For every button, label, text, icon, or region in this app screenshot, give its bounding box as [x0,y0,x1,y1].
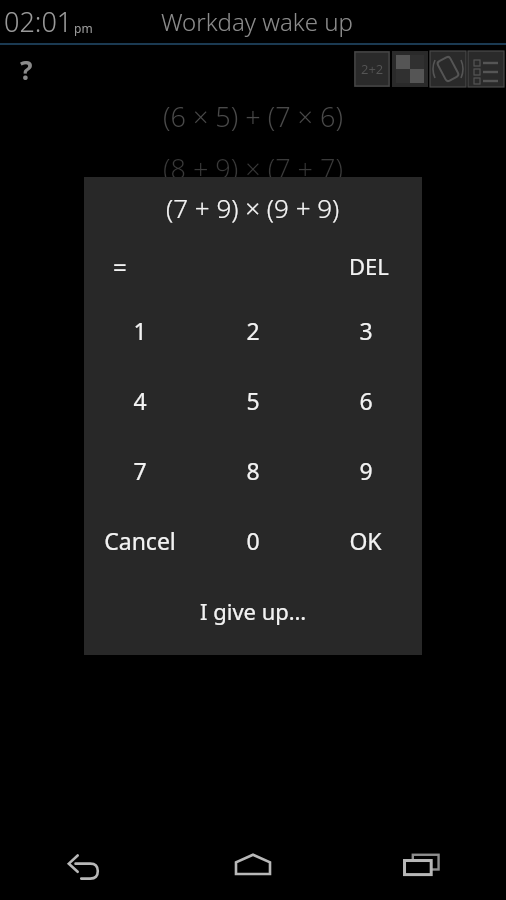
staticText: = [113,250,127,283]
button[interactable]: Help [6,49,46,89]
staticText: ? [20,52,33,87]
staticText: 5 [246,385,260,416]
button[interactable]: Pattern puzzle [392,51,428,87]
button[interactable]: 8 [196,435,309,505]
staticText: 2 [246,315,260,346]
staticText: 9 [359,455,373,486]
button[interactable]: Checklist puzzle [468,51,504,87]
staticText: (7 + 9) × (9 + 9) [166,190,340,225]
staticText: 02:01 [4,3,73,40]
button[interactable]: I give up… [163,583,343,639]
staticText: 7 [133,455,147,486]
button[interactable]: OK [309,505,422,575]
button[interactable]: 7 [84,435,196,505]
staticText: I give up… [200,596,307,626]
staticText: 8 [246,455,260,486]
button[interactable]: Home [168,830,337,900]
button[interactable]: 6 [309,365,422,435]
staticText: 1 [133,315,147,346]
staticText: 0 [246,525,260,556]
button[interactable]: 0 [196,505,309,575]
button[interactable]: 1 [84,295,196,365]
button[interactable]: DEL [334,240,404,292]
button[interactable]: Recent apps [337,830,506,900]
staticText: 4 [133,385,147,416]
staticText: Cancel [104,525,176,556]
button[interactable]: 3 [309,295,422,365]
staticText: 6 [359,385,373,416]
button[interactable]: Cancel [84,505,196,575]
button[interactable]: Back [0,830,168,900]
button[interactable]: Math puzzle [354,51,390,87]
staticText: DEL [349,251,389,281]
staticText: Workday wake up [161,5,353,38]
button[interactable]: 9 [309,435,422,505]
button[interactable]: = [90,240,150,292]
staticText: (6 × 5) + (7 × 6) [163,98,343,135]
staticText: 3 [359,315,373,346]
button[interactable]: 2 [196,295,309,365]
staticText: pm [74,20,93,36]
button[interactable]: 4 [84,365,196,435]
staticText: 2+2 [361,60,384,78]
button[interactable]: 5 [196,365,309,435]
staticText: OK [349,525,382,556]
button[interactable]: Shake puzzle [430,51,466,87]
staticText: (8 + 9) × (7 + 7) [163,150,343,187]
